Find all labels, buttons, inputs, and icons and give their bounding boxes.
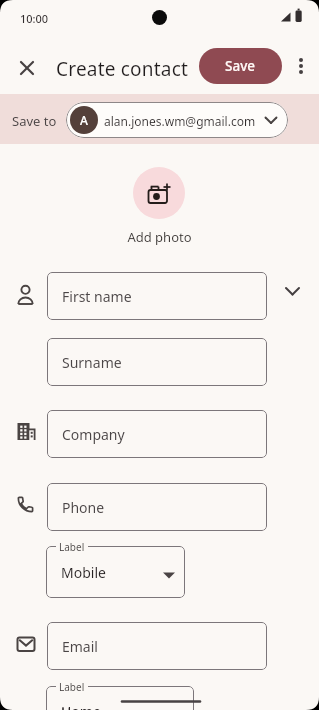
staticText: 10:00 [20, 11, 49, 26]
button[interactable]: Home [46, 686, 194, 710]
staticText: alan.jones.wm@gmail.com [104, 113, 256, 129]
button[interactable]: Surname [47, 338, 267, 386]
staticText: Phone [62, 498, 105, 517]
button[interactable]: Mobile [46, 546, 185, 598]
staticText: Home [61, 702, 101, 710]
button[interactable] [157, 563, 181, 587]
staticText: Add photo [0, 228, 319, 246]
button[interactable]: Save [199, 48, 282, 84]
button[interactable] [133, 167, 185, 219]
staticText: First name [62, 287, 132, 306]
button[interactable] [289, 54, 313, 78]
staticText: Company [62, 425, 125, 444]
staticText: Email [62, 637, 98, 656]
button[interactable]: Phone [47, 483, 267, 531]
staticText: Mobile [61, 563, 106, 582]
button[interactable] [15, 56, 39, 80]
button[interactable]: Email [47, 622, 267, 670]
staticText: A [80, 112, 88, 128]
button[interactable]: First name [47, 272, 267, 320]
staticText: Save to [12, 112, 57, 130]
staticText: Label [59, 680, 85, 694]
staticText: Label [59, 540, 85, 554]
staticText: Surname [62, 353, 122, 372]
button[interactable]: A [66, 102, 288, 138]
button[interactable]: Company [47, 410, 267, 458]
staticText: Create contact [56, 56, 189, 82]
staticText: Save [225, 57, 256, 75]
button[interactable] [280, 279, 304, 303]
staticText: Home [61, 703, 101, 710]
